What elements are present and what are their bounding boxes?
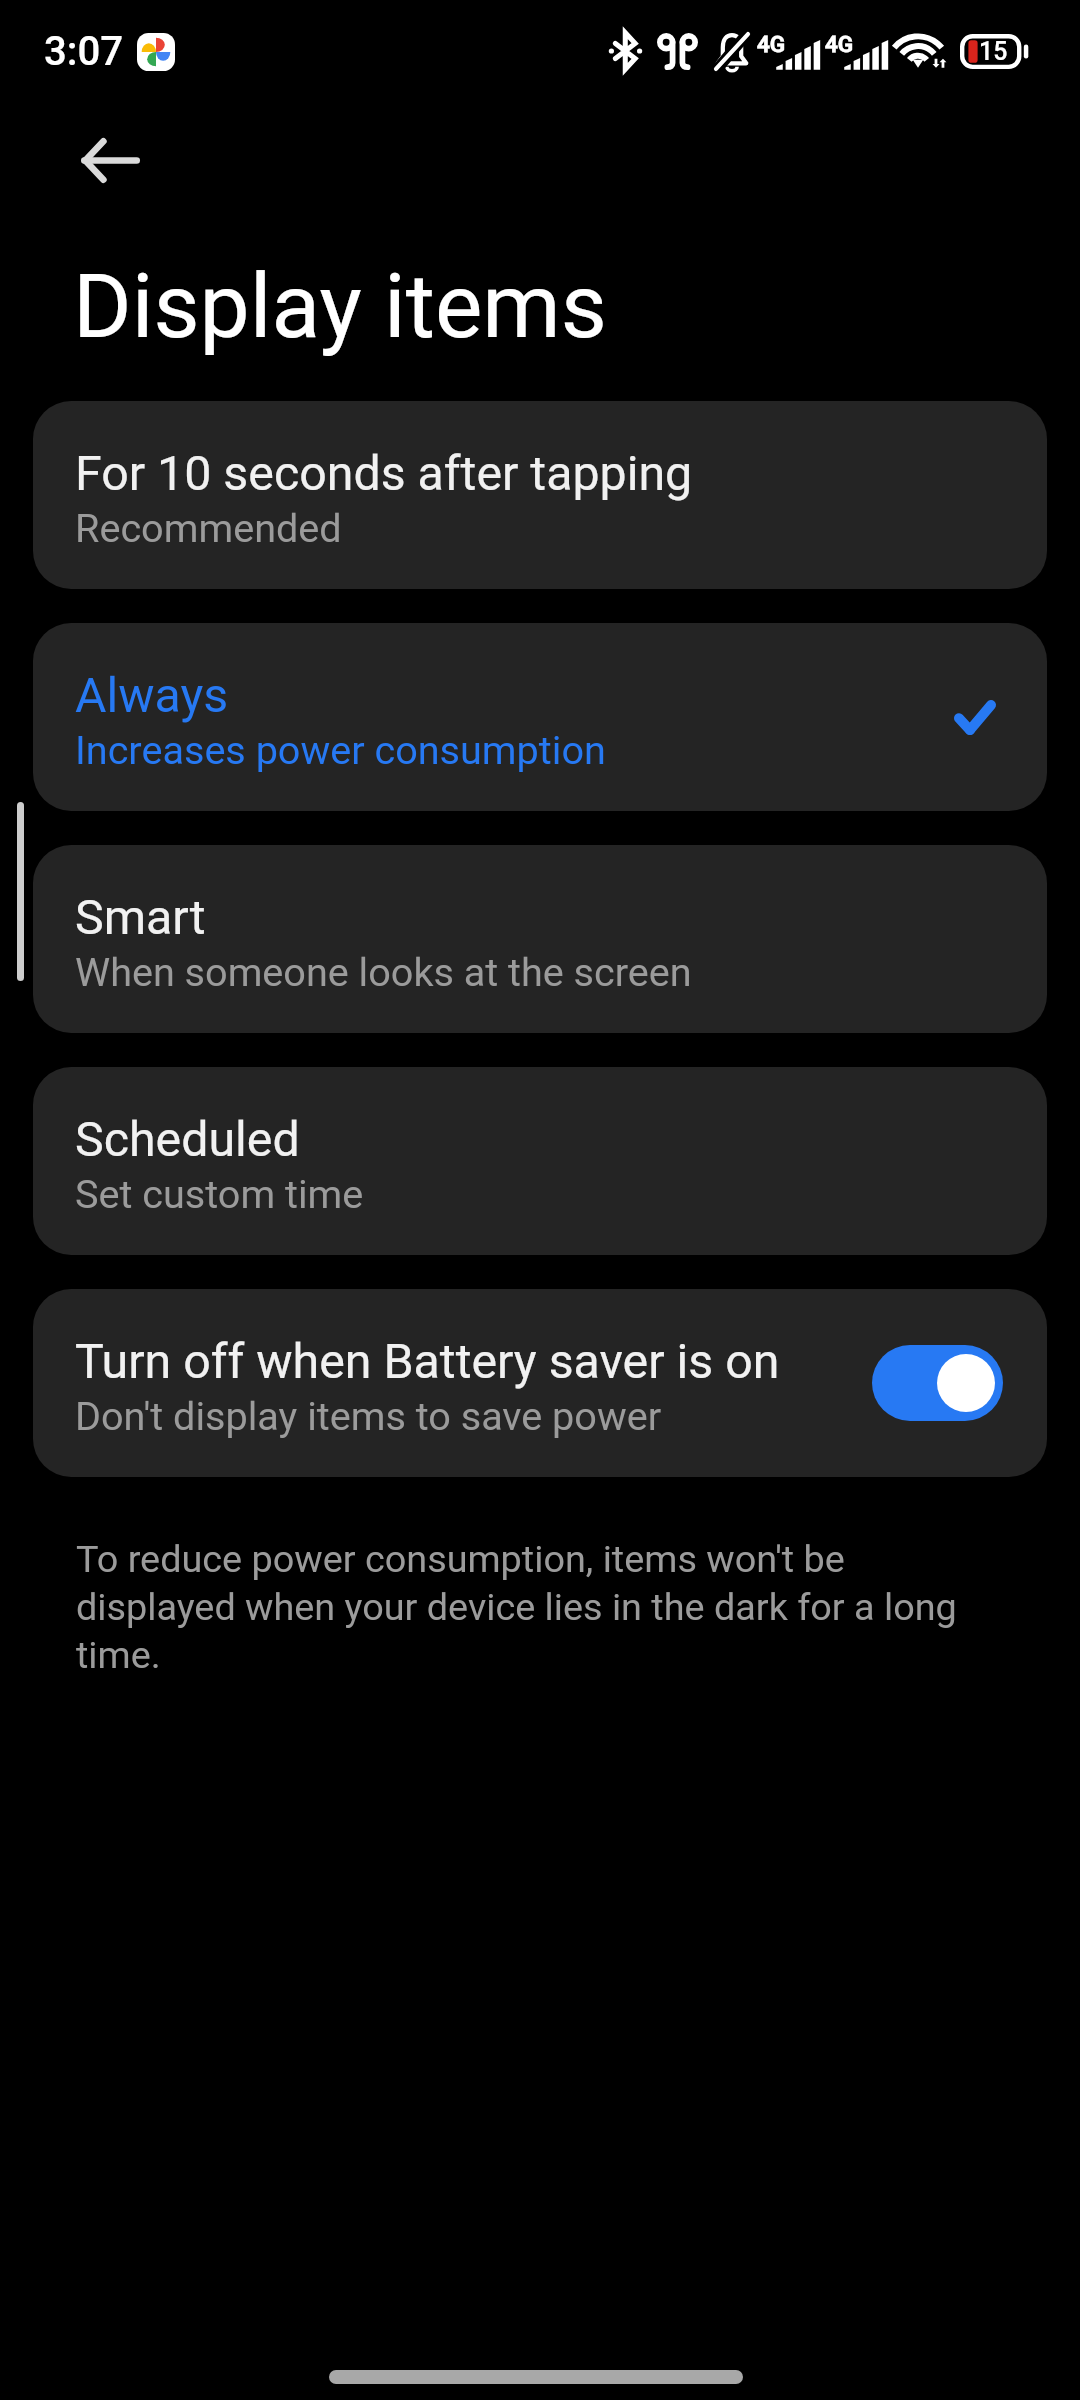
staticText: When someone looks at the screen (75, 949, 692, 995)
staticText: Always (75, 667, 229, 724)
staticText: To reduce power consumption, items won't… (76, 1537, 969, 1677)
staticText: Don't display items to save power (75, 1393, 662, 1439)
staticText: 4G (757, 31, 786, 57)
staticText: Scheduled (75, 1111, 300, 1168)
staticText: For 10 seconds after tapping (75, 445, 693, 502)
button[interactable]: Turn off when Battery saver is on (872, 1345, 1003, 1421)
staticText: Turn off when Battery saver is on (75, 1333, 780, 1390)
button[interactable]: Scheduled (33, 1067, 1047, 1255)
button[interactable]: For 10 seconds after tapping (33, 401, 1047, 589)
staticText: Smart (75, 889, 206, 946)
button[interactable]: Smart (33, 845, 1047, 1033)
staticText: 4G (825, 31, 854, 57)
staticText: Display items (73, 254, 607, 359)
staticText: 3:07 (44, 28, 124, 75)
button[interactable]: Always (33, 623, 1047, 811)
button[interactable]: Turn off when Battery saver is on (33, 1289, 1047, 1477)
staticText: Recommended (75, 505, 342, 551)
staticText: Increases power consumption (75, 727, 606, 773)
button[interactable]: Back (81, 138, 140, 183)
staticText: Set custom time (75, 1171, 364, 1217)
staticText: 15 (979, 37, 1008, 66)
